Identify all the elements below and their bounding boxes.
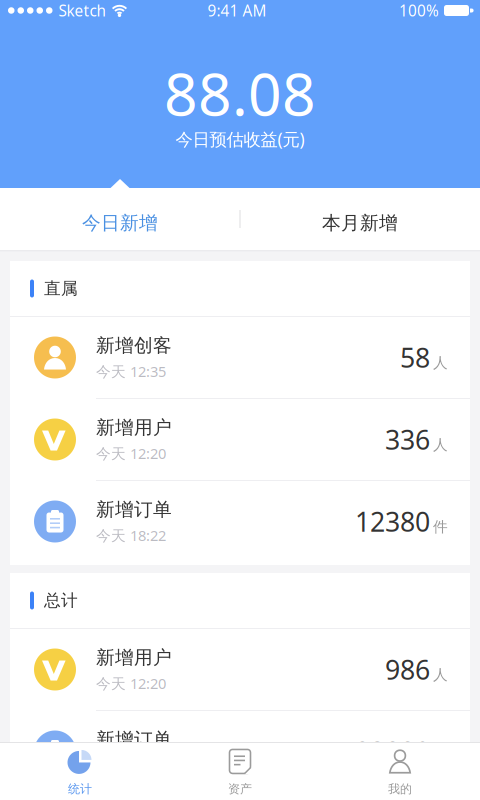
staticText: 新增用户 — [96, 646, 172, 669]
staticText: 今天 12:20 — [96, 673, 166, 693]
staticText: 今日新增 — [82, 211, 158, 235]
button[interactable]: 新增订单 — [10, 711, 470, 792]
staticText: 336 — [385, 421, 430, 458]
staticText: 88.08 — [164, 53, 316, 133]
staticText: 本月新增 — [322, 211, 398, 235]
staticText: 人 — [433, 666, 448, 684]
staticText: 新增创客 — [96, 334, 172, 357]
button[interactable]: 新增订单 — [10, 481, 470, 562]
staticText: 统计 — [68, 781, 92, 796]
staticText: 资产 — [228, 781, 252, 796]
staticText: 12380 — [355, 503, 430, 540]
staticText: 新增订单 — [96, 728, 172, 751]
staticText: 今天 18:22 — [96, 525, 166, 545]
staticText: 今天 12:35 — [96, 361, 166, 381]
button[interactable]: 资产 — [160, 743, 320, 800]
staticText: 人 — [433, 354, 448, 372]
staticText: 58 — [400, 339, 430, 376]
staticText: 23880 — [355, 733, 430, 770]
button[interactable]: 我的 — [320, 743, 480, 800]
button[interactable]: 新增创客 — [10, 317, 470, 398]
staticText: 件 — [433, 518, 448, 536]
button[interactable]: 今日新增 — [0, 188, 240, 250]
staticText: 我的 — [388, 781, 412, 796]
staticText: 新增订单 — [96, 498, 172, 521]
staticText: 9:41 AM — [207, 0, 266, 21]
button[interactable]: 新增用户 — [10, 399, 470, 480]
button[interactable]: 统计 — [0, 743, 160, 800]
button[interactable]: 本月新增 — [240, 188, 480, 250]
staticText: 今日预估收益(元) — [175, 127, 304, 151]
staticText: Sketch — [58, 0, 105, 21]
button[interactable]: 新增用户 — [10, 629, 470, 710]
staticText: 100% — [399, 0, 439, 21]
staticText: 直属 — [44, 278, 78, 299]
staticText: 总计 — [44, 590, 78, 611]
staticText: 今天 12:20 — [96, 443, 166, 463]
staticText: 人 — [433, 436, 448, 454]
staticText: 新增用户 — [96, 416, 172, 439]
staticText: 986 — [385, 651, 430, 688]
